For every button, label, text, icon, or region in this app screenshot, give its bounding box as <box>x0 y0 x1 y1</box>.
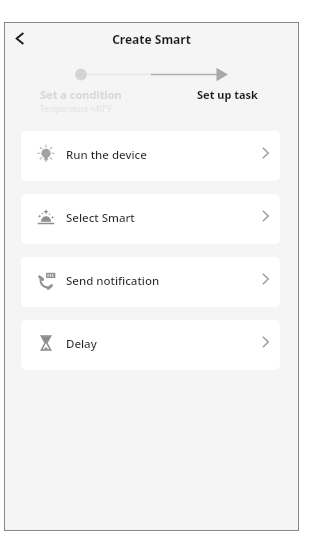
staticText: Run the device <box>66 147 147 163</box>
button[interactable]: Select Smart <box>21 194 280 244</box>
staticText: Set up task <box>197 87 258 102</box>
staticText: Set a condition <box>40 87 122 102</box>
button[interactable]: Send notification <box>21 257 280 307</box>
button[interactable]: Delay <box>21 320 280 370</box>
staticText: Send notification <box>66 273 160 289</box>
button[interactable]: Run the device <box>21 131 280 181</box>
staticText: Delay <box>66 336 97 352</box>
button[interactable]: Back <box>7 23 33 56</box>
staticText: Create Smart <box>112 31 191 47</box>
staticText: Temperature <40°F <box>40 103 112 114</box>
staticText: Select Smart <box>66 210 135 226</box>
